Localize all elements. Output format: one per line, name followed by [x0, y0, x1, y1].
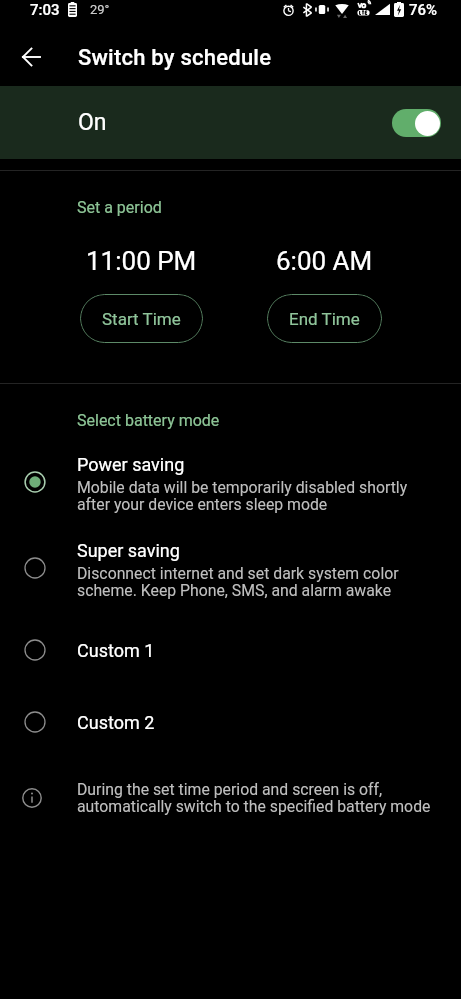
staticText: 76% — [409, 1, 438, 19]
staticText: Custom 2 — [77, 712, 155, 733]
staticText: 29° — [90, 2, 110, 17]
staticText: Custom 1 — [77, 640, 155, 661]
staticText: Select battery mode — [77, 411, 220, 430]
staticText: During the set time period and screen is… — [77, 780, 431, 816]
button[interactable]: On — [0, 86, 461, 159]
button[interactable] — [0, 698, 461, 746]
staticText: Power saving — [77, 454, 185, 475]
button[interactable]: Back — [0, 30, 64, 86]
button[interactable] — [0, 544, 461, 610]
button[interactable]: End Time — [267, 294, 382, 343]
button[interactable] — [0, 626, 461, 674]
staticText: Super saving — [77, 540, 180, 561]
staticText: Set a period — [77, 198, 162, 217]
staticText: 7:03 — [30, 1, 60, 19]
button[interactable]: Start Time — [80, 294, 203, 343]
staticText: 6:00 AM — [276, 246, 373, 276]
staticText: 11:00 PM — [86, 246, 197, 276]
staticText: Mobile data will be temporarily disabled… — [77, 478, 408, 514]
button[interactable] — [0, 458, 461, 524]
staticText: On — [78, 109, 107, 136]
staticText: End Time — [289, 309, 360, 329]
staticText: Switch by schedule — [78, 45, 272, 71]
staticText: Start Time — [102, 309, 181, 329]
staticText: Disconnect internet and set dark system … — [77, 564, 399, 600]
